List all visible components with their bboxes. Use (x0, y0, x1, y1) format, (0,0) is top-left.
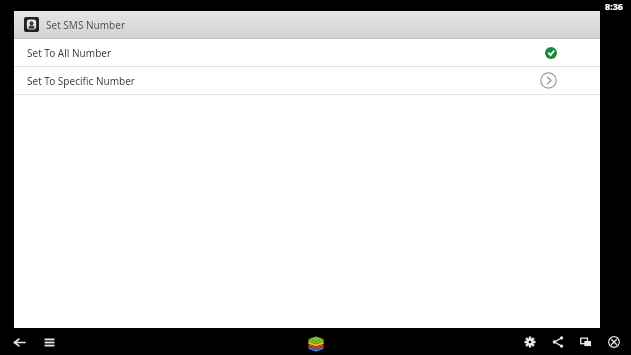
button[interactable]: Set To Specific Number (14, 67, 600, 94)
staticText: Set To All Number (27, 46, 112, 60)
button[interactable]: Windowed mode (575, 331, 597, 353)
button[interactable]: Menu (38, 331, 60, 353)
staticText: 8:36 (605, 0, 623, 11)
button[interactable]: Back (8, 331, 30, 353)
staticText: Set SMS Number (46, 18, 126, 32)
button[interactable]: BlueStacks Home (303, 331, 329, 353)
button[interactable]: Close (603, 331, 625, 353)
button[interactable]: Share (547, 331, 569, 353)
staticText: Set To Specific Number (27, 74, 135, 88)
button[interactable]: Settings (519, 331, 541, 353)
button[interactable]: Set To All Number (14, 39, 600, 66)
